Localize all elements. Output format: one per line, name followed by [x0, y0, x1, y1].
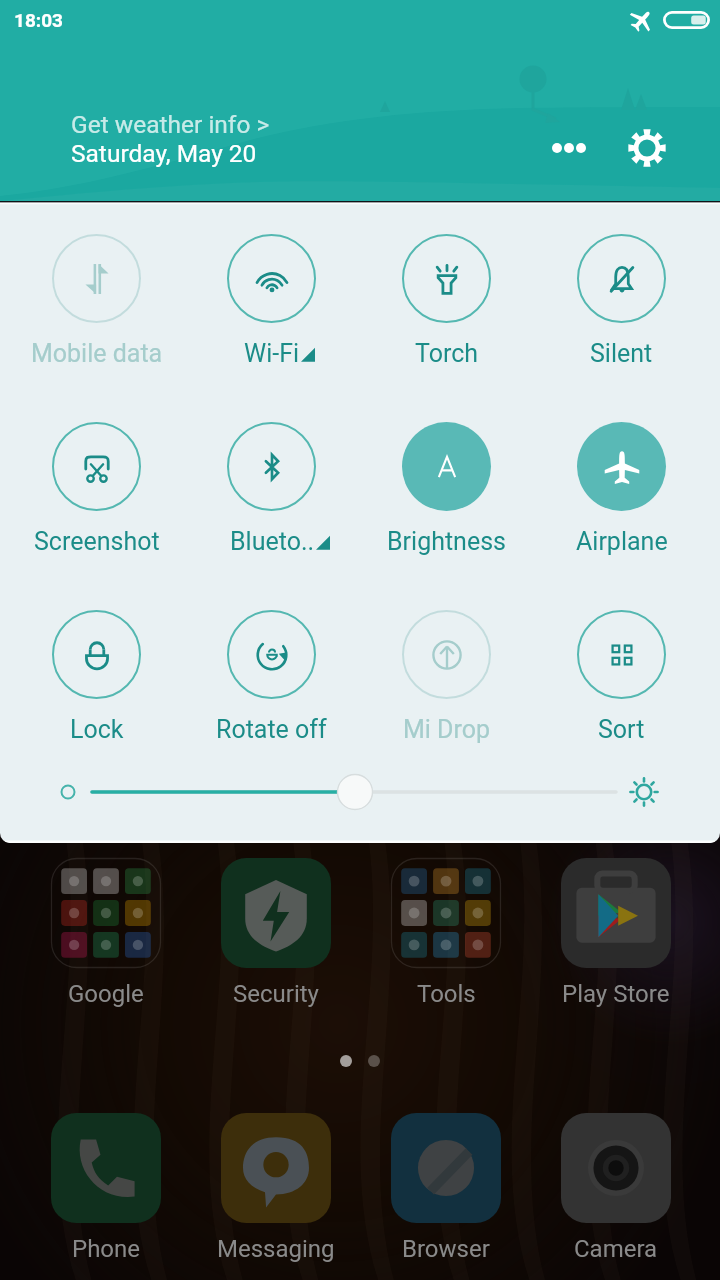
button[interactable]: Lock [9, 610, 184, 744]
staticText: Brightness [387, 527, 506, 556]
staticText: Airplane [576, 527, 668, 556]
button[interactable]: Tools [361, 858, 531, 1008]
staticText: Torch [415, 339, 479, 368]
staticText: Google [68, 980, 144, 1008]
staticText: Mi Drop [403, 715, 491, 744]
staticText: Wi-Fi [244, 339, 300, 368]
button[interactable]: More options [544, 123, 594, 173]
button[interactable]: Phone [21, 1113, 191, 1263]
staticText: Silent [590, 339, 653, 368]
button[interactable]: Brightness [359, 422, 534, 556]
button[interactable]: Security [191, 858, 361, 1008]
staticText: Phone [72, 1235, 141, 1263]
staticText: Tools [417, 980, 476, 1008]
staticText: Lock [70, 715, 124, 744]
button[interactable]: Mobile data [9, 234, 184, 368]
staticText: Screenshot [34, 527, 160, 556]
button[interactable]: Blueto.. [184, 422, 359, 556]
button[interactable]: Mi Drop [359, 610, 534, 744]
button[interactable]: Silent [534, 234, 709, 368]
button[interactable]: Play Store [531, 858, 701, 1008]
staticText: Rotate off [216, 715, 327, 744]
staticText: Security [233, 980, 319, 1008]
staticText: Camera [574, 1235, 658, 1263]
staticText: Sort [598, 715, 645, 744]
button[interactable]: Google [21, 858, 191, 1008]
button[interactable]: Camera [531, 1113, 701, 1263]
button[interactable]: Wi-Fi [184, 234, 359, 368]
button[interactable]: Settings [619, 120, 675, 176]
button[interactable]: Sort [534, 610, 709, 744]
button[interactable]: Rotate off [184, 610, 359, 744]
staticText: Messaging [217, 1235, 335, 1263]
button[interactable]: Screenshot [9, 422, 184, 556]
button[interactable]: Airplane [534, 422, 709, 556]
staticText: Blueto.. [230, 527, 315, 556]
staticText: Play Store [562, 980, 670, 1008]
staticText: 18:03 [14, 9, 63, 31]
staticText: Browser [402, 1235, 490, 1263]
button[interactable]: Messaging [191, 1113, 361, 1263]
button[interactable]: Browser [361, 1113, 531, 1263]
staticText: Mobile data [31, 339, 163, 368]
button[interactable]: Torch [359, 234, 534, 368]
staticText: Get weather info > [71, 110, 270, 139]
staticText: Saturday, May 20 [71, 139, 257, 168]
